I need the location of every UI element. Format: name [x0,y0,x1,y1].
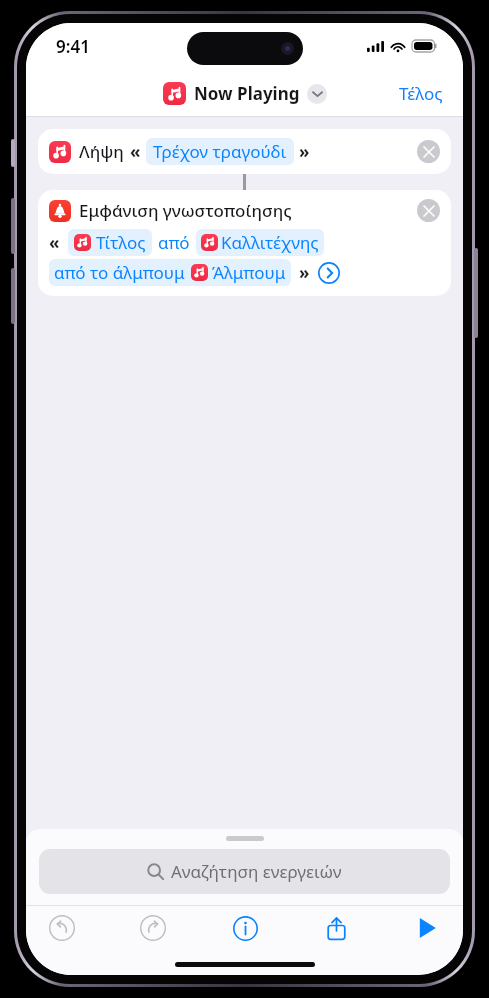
staticText: » [299,261,310,284]
button[interactable]: Show more [318,262,340,284]
staticText: Τίτλος [96,231,146,254]
staticText: « [130,140,141,163]
button[interactable]: Remove action [417,140,440,163]
button[interactable]: Now Playing [163,82,327,105]
staticText: » [299,140,310,163]
button[interactable]: Τέλος [379,76,463,111]
staticText: Εμφάνιση γνωστοποίησης [79,199,292,222]
staticText: Τρέχον τραγούδι [153,140,287,163]
staticText: 9:41 [56,35,90,58]
button[interactable]: Share [314,906,358,950]
staticText: Άλμπουμ [212,261,286,284]
other: Show menu [307,84,327,104]
button[interactable]: Redo [131,906,175,950]
button[interactable]: Λήψη [38,129,451,174]
button[interactable]: Αναζήτηση ενεργειών [39,849,450,894]
staticText: Τέλος [399,82,443,105]
button[interactable]: Run [405,906,449,950]
button[interactable]: Undo [40,906,84,950]
staticText: Now Playing [194,82,300,105]
staticText: από το άλμπουμ [54,261,185,284]
staticText: Αναζήτηση ενεργειών [171,860,342,883]
staticText: από [158,231,190,254]
staticText: « [49,231,60,254]
button[interactable]: Info [223,906,267,950]
button[interactable]: Remove action [417,199,440,222]
staticText: Λήψη [79,140,124,163]
staticText: Καλλιτέχνης [221,231,319,254]
button[interactable]: Εμφάνιση γνωστοποίησης [38,190,451,296]
